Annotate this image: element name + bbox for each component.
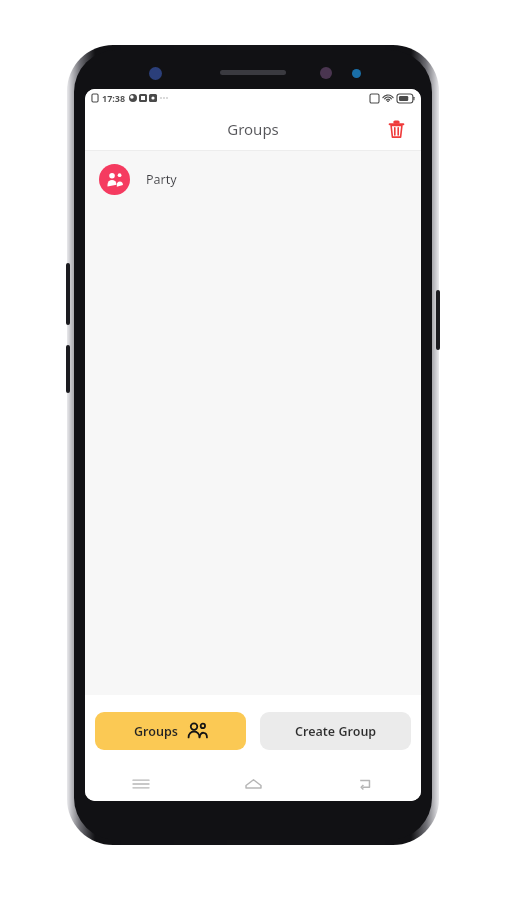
staticText: Groups bbox=[134, 723, 178, 740]
button[interactable]: Recent apps bbox=[85, 767, 197, 801]
button[interactable]: Create Group bbox=[260, 712, 411, 750]
button[interactable]: Home bbox=[197, 767, 309, 801]
staticText: Create Group bbox=[295, 723, 377, 740]
button[interactable]: Party bbox=[85, 151, 421, 207]
staticText: Party bbox=[146, 171, 177, 188]
staticText: 17:38 bbox=[102, 92, 126, 104]
staticText: Groups bbox=[227, 119, 279, 139]
button[interactable]: Back bbox=[309, 767, 421, 801]
button[interactable]: Delete bbox=[381, 114, 411, 144]
button[interactable]: Groups bbox=[95, 712, 246, 750]
